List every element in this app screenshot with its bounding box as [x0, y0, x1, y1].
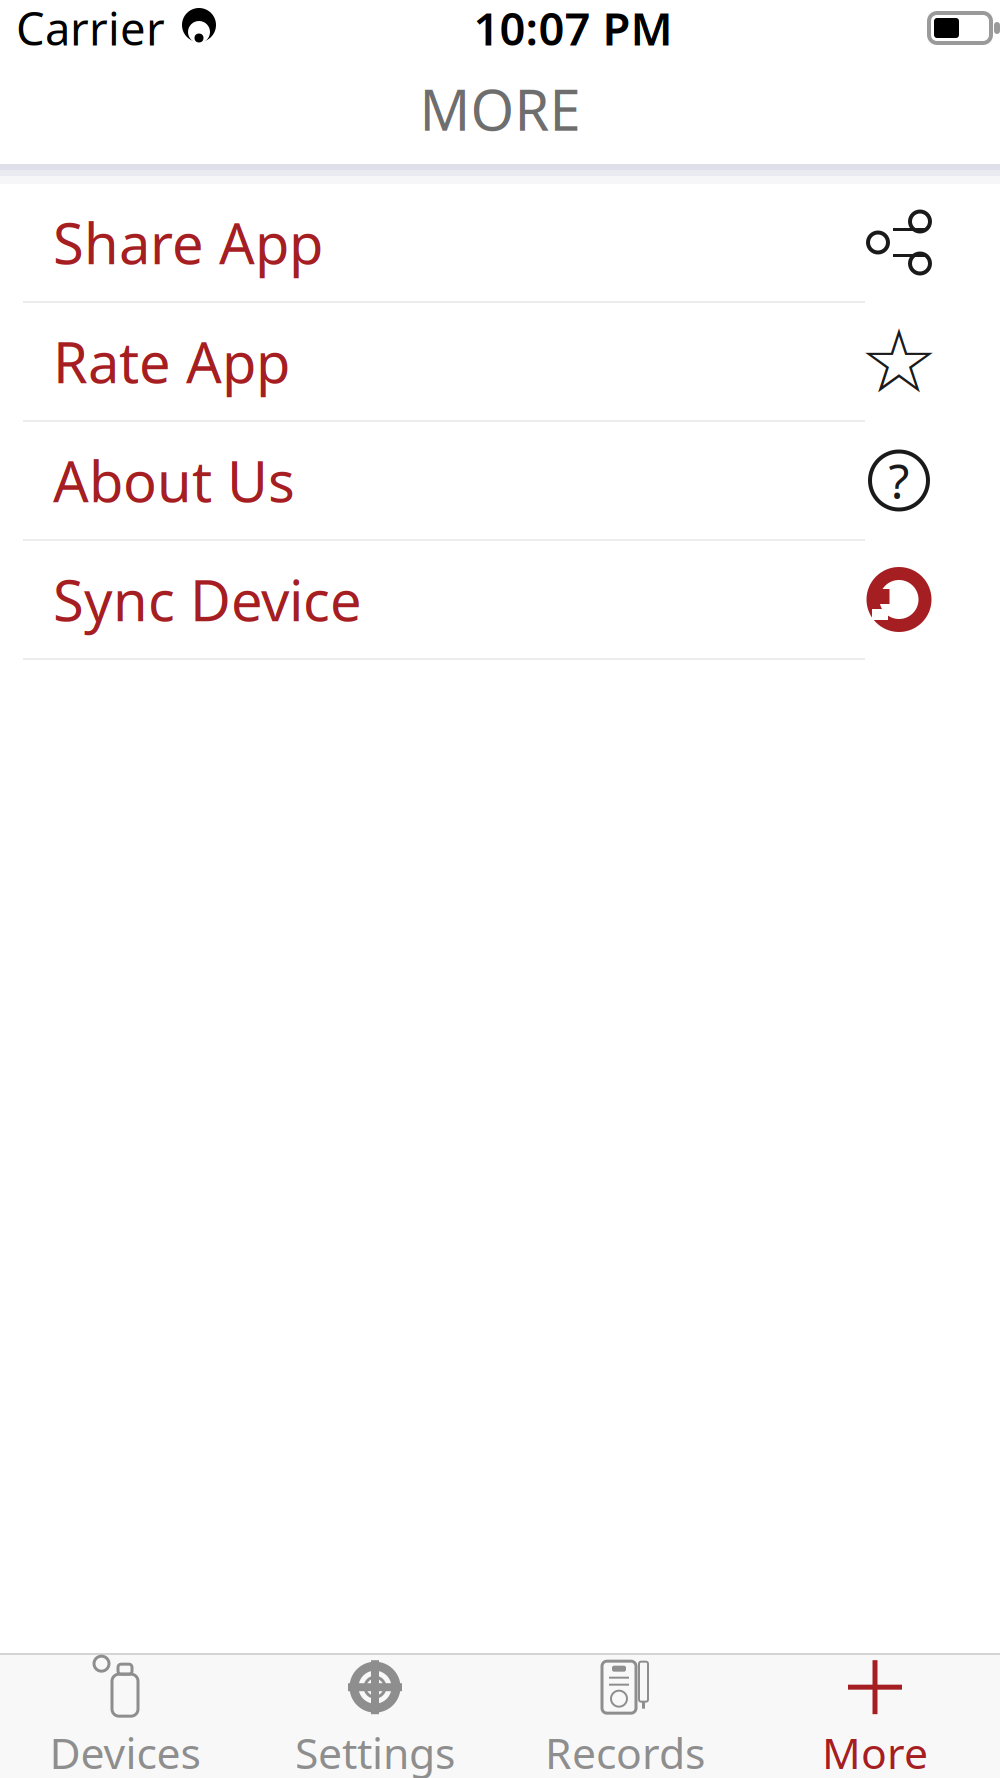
button[interactable]: Devices	[0, 1656, 250, 1778]
button[interactable]: Settings	[250, 1656, 500, 1778]
staticText: Records	[545, 1724, 705, 1778]
staticText: Share App	[53, 205, 323, 280]
staticText: More	[822, 1724, 928, 1778]
staticText: Rate App	[53, 324, 290, 399]
staticText: ☆	[859, 312, 938, 411]
staticText: ?	[888, 449, 909, 512]
button[interactable]: Share App	[0, 184, 1000, 303]
staticText: Sync Device	[53, 562, 362, 637]
button[interactable]: Rate App	[0, 303, 1000, 422]
staticText: 10:07 PM	[473, 0, 672, 58]
button[interactable]: Sync Device	[0, 541, 1000, 660]
button[interactable]: More	[750, 1656, 1000, 1778]
button[interactable]: Records	[500, 1656, 750, 1778]
staticText: Devices	[49, 1724, 200, 1778]
staticText: Settings	[295, 1724, 455, 1778]
staticText: About Us	[53, 443, 295, 518]
staticText: MORE	[419, 72, 580, 146]
staticText: Carrier	[16, 0, 165, 58]
button[interactable]: About Us	[0, 422, 1000, 541]
